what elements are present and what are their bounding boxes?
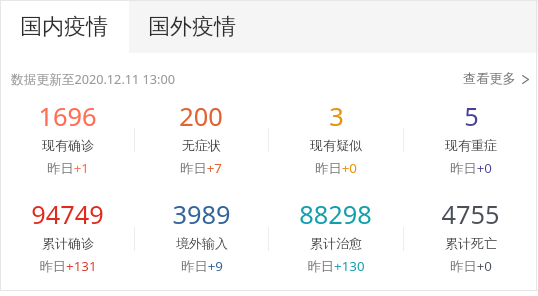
staticText: 昨日+7 (180, 159, 222, 177)
button[interactable]: 5 (403, 95, 538, 194)
staticText: 4755 (441, 197, 500, 232)
staticText: 现有疑似 (310, 137, 362, 153)
button[interactable]: 4755 (403, 194, 538, 293)
staticText: 累计治愈 (310, 235, 362, 251)
staticText: 3989 (172, 197, 231, 232)
staticText: 3 (329, 99, 344, 134)
button[interactable]: 查看更多 (463, 70, 528, 87)
staticText: 境外输入 (176, 235, 228, 251)
staticText: 昨日+0 (450, 257, 492, 275)
staticText: 昨日+130 (307, 257, 365, 275)
staticText: 94749 (31, 197, 104, 232)
button[interactable]: 1696 (0, 95, 134, 194)
staticText: 累计确诊 (42, 235, 94, 251)
staticText: 昨日+0 (450, 159, 492, 177)
staticText: 200 (179, 99, 223, 134)
staticText: 累计死亡 (445, 235, 497, 251)
staticText: 现有重症 (445, 137, 497, 153)
button[interactable]: 94749 (0, 194, 134, 293)
staticText: 国内疫情 (20, 13, 108, 41)
staticText: 数据更新至2020.12.11 13:00 (11, 70, 176, 87)
staticText: 无症状 (182, 137, 221, 153)
button[interactable]: 3989 (134, 194, 268, 293)
staticText: 昨日+0 (315, 159, 357, 177)
button[interactable]: 国内疫情 (0, 1, 129, 53)
staticText: 现有确诊 (42, 137, 94, 153)
staticText: 1696 (38, 99, 97, 134)
staticText: 昨日+131 (39, 257, 97, 275)
button[interactable]: 国外疫情 (129, 1, 538, 53)
button[interactable]: 200 (134, 95, 268, 194)
staticText: 88298 (299, 197, 372, 232)
button[interactable]: 3 (268, 95, 403, 194)
staticText: 昨日+9 (181, 257, 223, 275)
staticText: 昨日+1 (47, 159, 89, 177)
staticText: 5 (464, 99, 479, 134)
button[interactable]: 88298 (268, 194, 403, 293)
staticText: 国外疫情 (148, 13, 236, 41)
staticText: 查看更多 (463, 70, 516, 87)
